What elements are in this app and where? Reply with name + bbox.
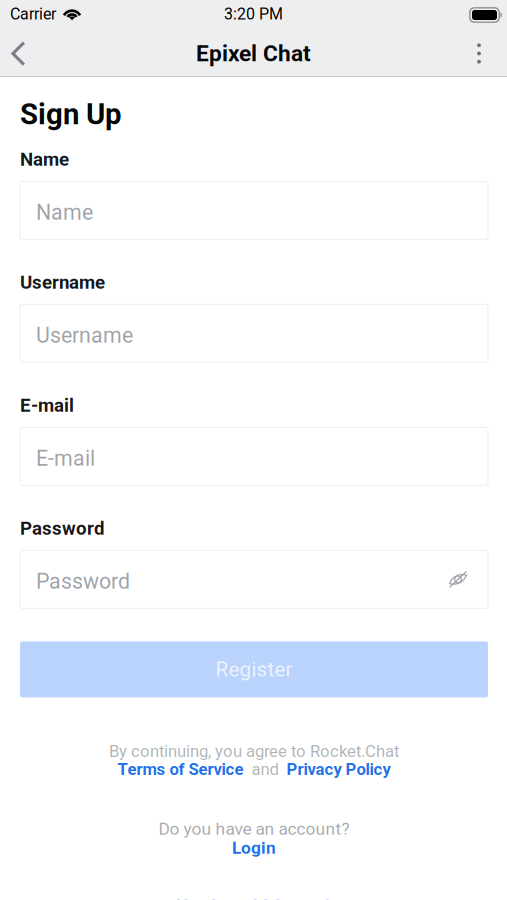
staticText: By continuing, you agree to Rocket.Chat — [109, 742, 399, 761]
button[interactable]: Privacy Policy — [286, 760, 390, 779]
button[interactable]: Name — [20, 181, 488, 239]
staticText: Need an old Server? — [176, 896, 332, 900]
staticText: Name — [36, 200, 93, 225]
staticText: Sign Up — [20, 97, 122, 131]
staticText: Password — [20, 517, 105, 539]
button[interactable]: Register — [20, 641, 488, 697]
staticText: Terms of Service — [117, 760, 243, 779]
staticText: Username — [20, 271, 105, 293]
staticText: Privacy Policy — [286, 760, 390, 779]
staticText: Username — [36, 323, 133, 348]
staticText: Carrier — [10, 5, 56, 23]
staticText: Epixel Chat — [196, 40, 311, 67]
staticText: E-mail — [36, 446, 95, 471]
staticText: E-mail — [20, 394, 74, 416]
button[interactable]: Back — [0, 30, 37, 77]
staticText: Register — [215, 657, 292, 681]
button[interactable]: E-mail — [20, 427, 488, 485]
button[interactable]: Login — [232, 838, 276, 857]
button[interactable]: Password — [20, 550, 488, 608]
staticText: Password — [36, 569, 130, 594]
button[interactable]: Terms of Service — [117, 760, 243, 779]
staticText: Do you have an account? — [158, 819, 349, 839]
button[interactable]: Need an old Server? — [176, 896, 332, 900]
staticText: Name — [20, 148, 69, 170]
staticText: 3:20 PM — [224, 5, 283, 23]
staticText: and — [243, 760, 286, 779]
button[interactable]: More options — [457, 30, 501, 77]
staticText: Login — [232, 838, 276, 858]
button[interactable]: Username — [20, 304, 488, 362]
